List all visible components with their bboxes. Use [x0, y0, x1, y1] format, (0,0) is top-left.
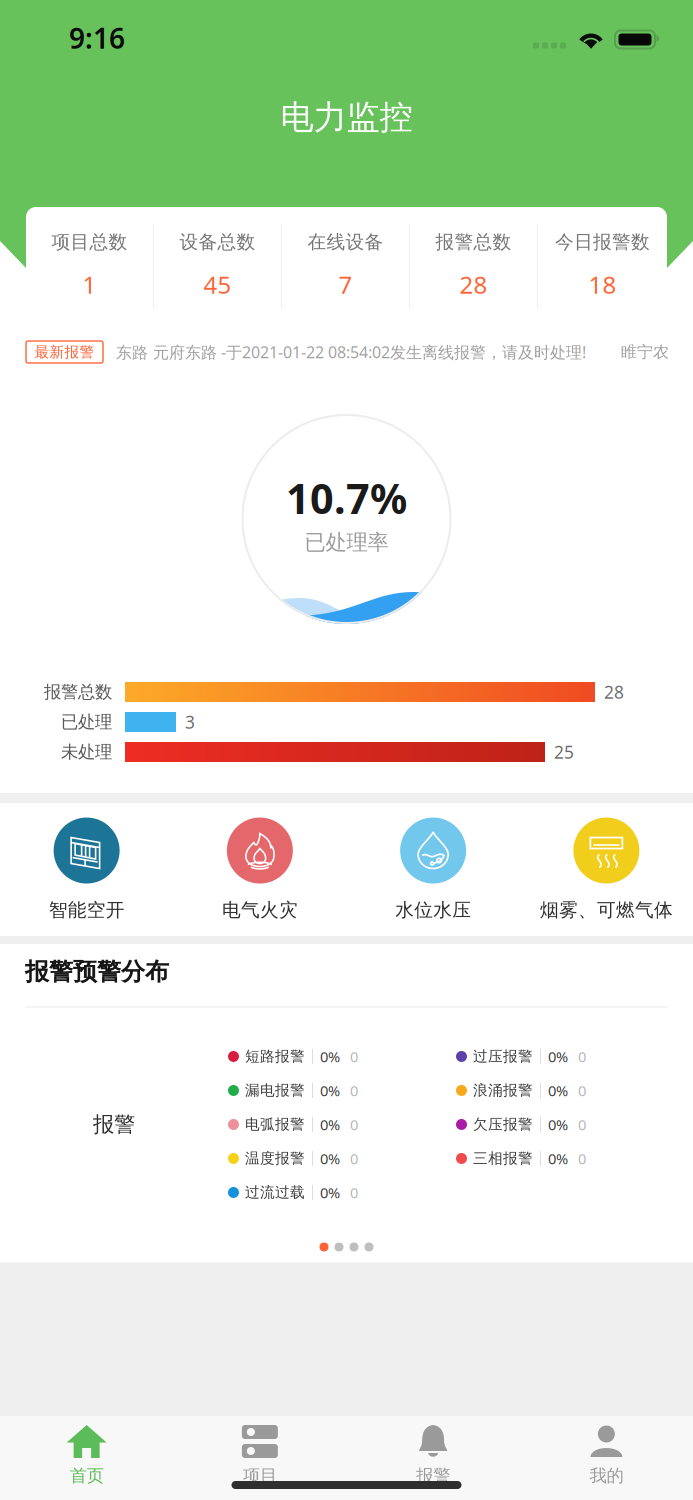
staticText: 0%: [320, 1115, 340, 1134]
staticText: 最新报警: [34, 343, 94, 361]
staticText: 0%: [548, 1115, 568, 1134]
staticText: 10.7%: [286, 470, 407, 525]
staticText: 睢宁农: [621, 342, 669, 362]
staticText: 设备总数: [179, 231, 255, 253]
button[interactable]: 设备总数: [154, 207, 281, 324]
staticText: 已处理率: [304, 529, 388, 555]
button[interactable]: 烟雾、可燃气体: [520, 817, 693, 921]
staticText: 未处理: [61, 741, 112, 763]
staticText: 过压报警: [473, 1047, 533, 1065]
button[interactable]: 我的: [520, 1424, 693, 1486]
staticText: 0: [350, 1081, 358, 1100]
staticText: 28: [459, 268, 487, 300]
staticText: 0%: [548, 1081, 568, 1100]
staticText: 水位水压: [395, 898, 471, 921]
staticText: 7: [338, 268, 352, 300]
staticText: 0%: [320, 1149, 340, 1168]
staticText: 首页: [70, 1465, 104, 1486]
staticText: 0: [578, 1149, 586, 1168]
staticText: 智能空开: [49, 898, 125, 921]
staticText: 今日报警数: [555, 231, 650, 253]
button[interactable]: 报警: [346, 1424, 520, 1486]
staticText: 45: [203, 268, 231, 300]
staticText: 28: [604, 680, 624, 703]
staticText: 浪涌报警: [473, 1081, 533, 1099]
staticText: 9:16: [69, 19, 125, 57]
staticText: 我的: [589, 1465, 623, 1486]
staticText: 温度报警: [245, 1149, 305, 1167]
staticText: 过流过载: [245, 1183, 305, 1201]
staticText: 电力监控: [280, 97, 412, 138]
staticText: 1: [82, 268, 96, 300]
staticText: 0%: [320, 1183, 340, 1202]
staticText: 3: [185, 710, 195, 733]
staticText: 漏电报警: [245, 1081, 305, 1099]
staticText: 0%: [320, 1081, 340, 1100]
button[interactable]: 智能空开: [0, 817, 173, 921]
staticText: 在线设备: [307, 231, 383, 253]
button[interactable]: 在线设备: [282, 207, 409, 324]
staticText: 0%: [548, 1149, 568, 1168]
staticText: 欠压报警: [473, 1115, 533, 1133]
staticText: 0%: [320, 1047, 340, 1066]
staticText: 0: [578, 1115, 586, 1134]
staticText: 报警预警分布: [25, 957, 169, 986]
button[interactable]: 电气火灾: [173, 817, 346, 921]
staticText: 东路 元府东路 -于2021-01-22 08:54:02发生离线报警，请及时处…: [116, 341, 586, 363]
staticText: 已处理: [61, 711, 112, 733]
staticText: 电弧报警: [245, 1115, 305, 1133]
staticText: 0: [578, 1047, 586, 1066]
staticText: 报警: [416, 1465, 450, 1486]
button[interactable]: 今日报警数: [538, 207, 667, 324]
staticText: 项目总数: [51, 231, 127, 253]
button[interactable]: 项目总数: [26, 207, 153, 324]
staticText: 三相报警: [473, 1149, 533, 1167]
staticText: 报警总数: [44, 681, 112, 703]
staticText: 短路报警: [245, 1047, 305, 1065]
staticText: 18: [588, 268, 616, 300]
staticText: 0: [350, 1149, 358, 1168]
button[interactable]: 报警总数: [410, 207, 537, 324]
staticText: 项目: [243, 1465, 277, 1486]
staticText: 25: [554, 740, 574, 763]
staticText: 报警: [93, 1111, 135, 1138]
staticText: 0: [350, 1115, 358, 1134]
button[interactable]: 最新报警: [26, 341, 103, 363]
staticText: 电气火灾: [222, 898, 298, 921]
staticText: 0: [350, 1183, 358, 1202]
button[interactable]: 首页: [0, 1424, 173, 1486]
staticText: 0%: [548, 1047, 568, 1066]
staticText: 0: [350, 1047, 358, 1066]
button[interactable]: 水位水压: [346, 817, 520, 921]
staticText: 报警总数: [435, 231, 511, 253]
staticText: 0: [578, 1081, 586, 1100]
staticText: 烟雾、可燃气体: [540, 898, 673, 921]
button[interactable]: 项目: [173, 1424, 346, 1486]
